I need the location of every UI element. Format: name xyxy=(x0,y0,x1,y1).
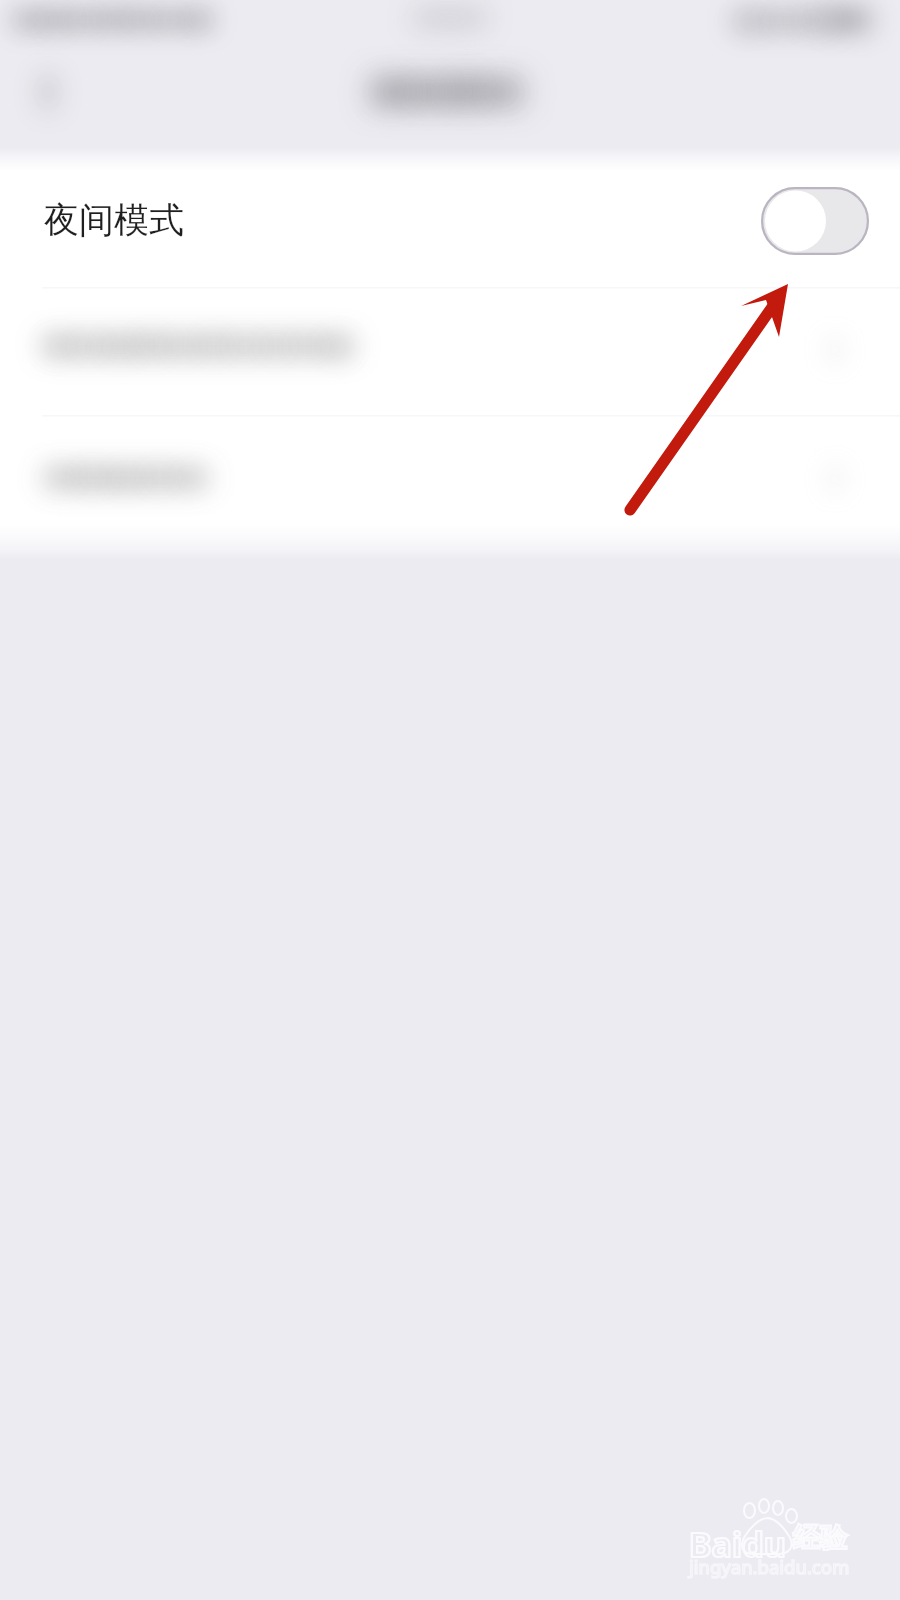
button[interactable]: Settings item xyxy=(0,287,900,415)
staticText: 经验 xyxy=(793,1521,847,1555)
button[interactable]: 夜间模式 xyxy=(0,148,900,287)
button[interactable]: Settings item xyxy=(0,415,900,543)
staticText: 夜间模式 xyxy=(44,198,184,242)
button[interactable]: Night mode switch, off xyxy=(761,187,869,255)
staticText: Baidu xyxy=(689,1521,786,1567)
staticText: jingyan.baidu.com xyxy=(689,1554,850,1579)
